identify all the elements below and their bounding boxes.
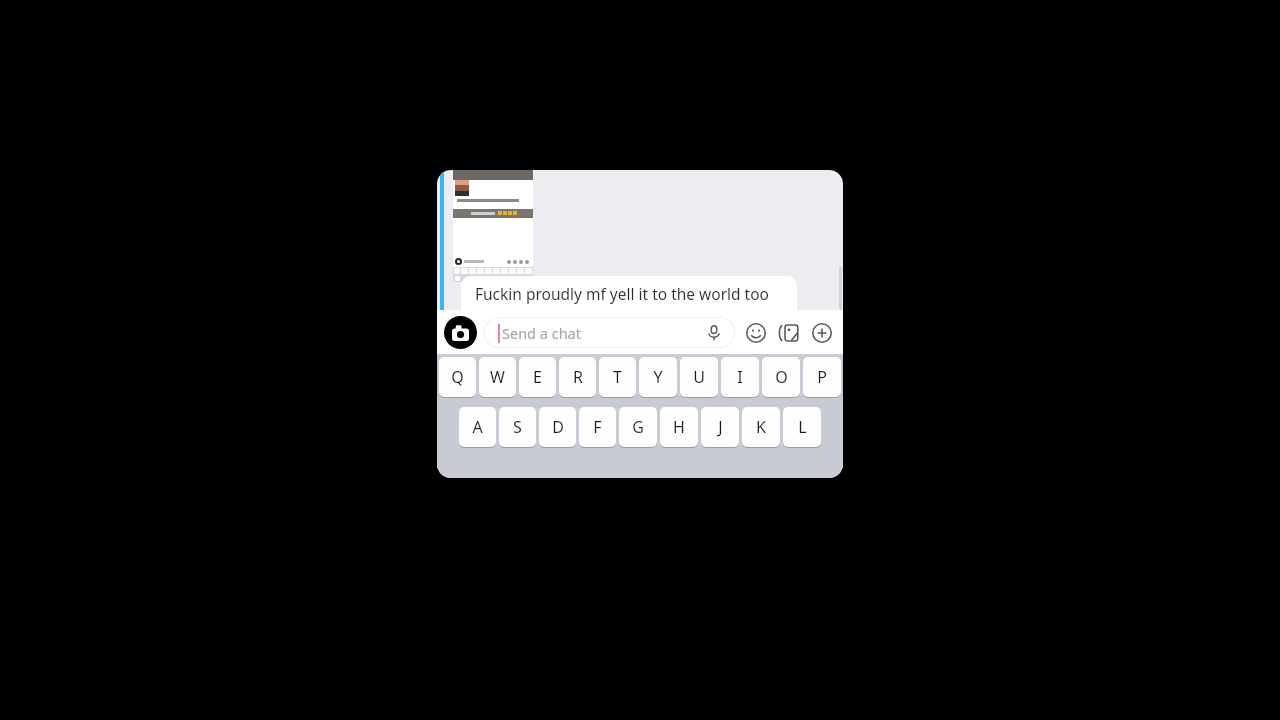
button[interactable]: Q [439, 357, 476, 397]
button[interactable]: U [680, 357, 718, 397]
button[interactable]: Send a chat [484, 317, 735, 348]
staticText: R [573, 366, 583, 388]
staticText: Send a chat [502, 323, 581, 343]
staticText: A [472, 416, 483, 438]
staticText: Q [451, 366, 464, 388]
button[interactable]: K [742, 407, 780, 447]
staticText: P [817, 366, 827, 388]
button[interactable]: J [701, 407, 739, 447]
button[interactable]: L [783, 407, 821, 447]
button[interactable]: Voice message [704, 323, 724, 343]
button[interactable]: I [721, 357, 759, 397]
button[interactable]: Y [639, 357, 677, 397]
staticText: O [775, 366, 788, 388]
staticText: F [593, 416, 602, 438]
button[interactable]: Camera [444, 316, 477, 349]
staticText: T [613, 366, 622, 388]
staticText: Fuckin proudly mf yell it to the world t… [475, 283, 769, 304]
button[interactable]: H [660, 407, 698, 447]
staticText: W [490, 366, 505, 388]
button[interactable]: E [519, 357, 556, 397]
button[interactable]: P [803, 357, 841, 397]
button[interactable]: G [619, 407, 657, 447]
staticText: I [737, 366, 743, 388]
button[interactable]: O [762, 357, 800, 397]
staticText: Y [653, 366, 663, 388]
button[interactable]: Send a Snap from camera roll [777, 321, 801, 345]
staticText: G [632, 416, 644, 438]
staticText: D [552, 416, 564, 438]
staticText: H [673, 416, 685, 438]
button[interactable]: A [459, 407, 496, 447]
staticText: E [533, 366, 542, 388]
staticText: L [798, 416, 807, 438]
button[interactable]: T [599, 357, 636, 397]
button[interactable]: More options [810, 321, 834, 345]
button[interactable]: D [539, 407, 576, 447]
button[interactable]: S [499, 407, 536, 447]
button[interactable]: R [559, 357, 596, 397]
button[interactable]: Fuckin proudly mf yell it to the world t… [461, 276, 797, 310]
staticText: S [513, 416, 522, 438]
button[interactable]: Stickers [744, 321, 768, 345]
button[interactable]: W [479, 357, 516, 397]
staticText: U [693, 366, 705, 388]
button[interactable]: F [579, 407, 616, 447]
staticText: J [718, 416, 723, 438]
staticText: K [756, 416, 766, 438]
